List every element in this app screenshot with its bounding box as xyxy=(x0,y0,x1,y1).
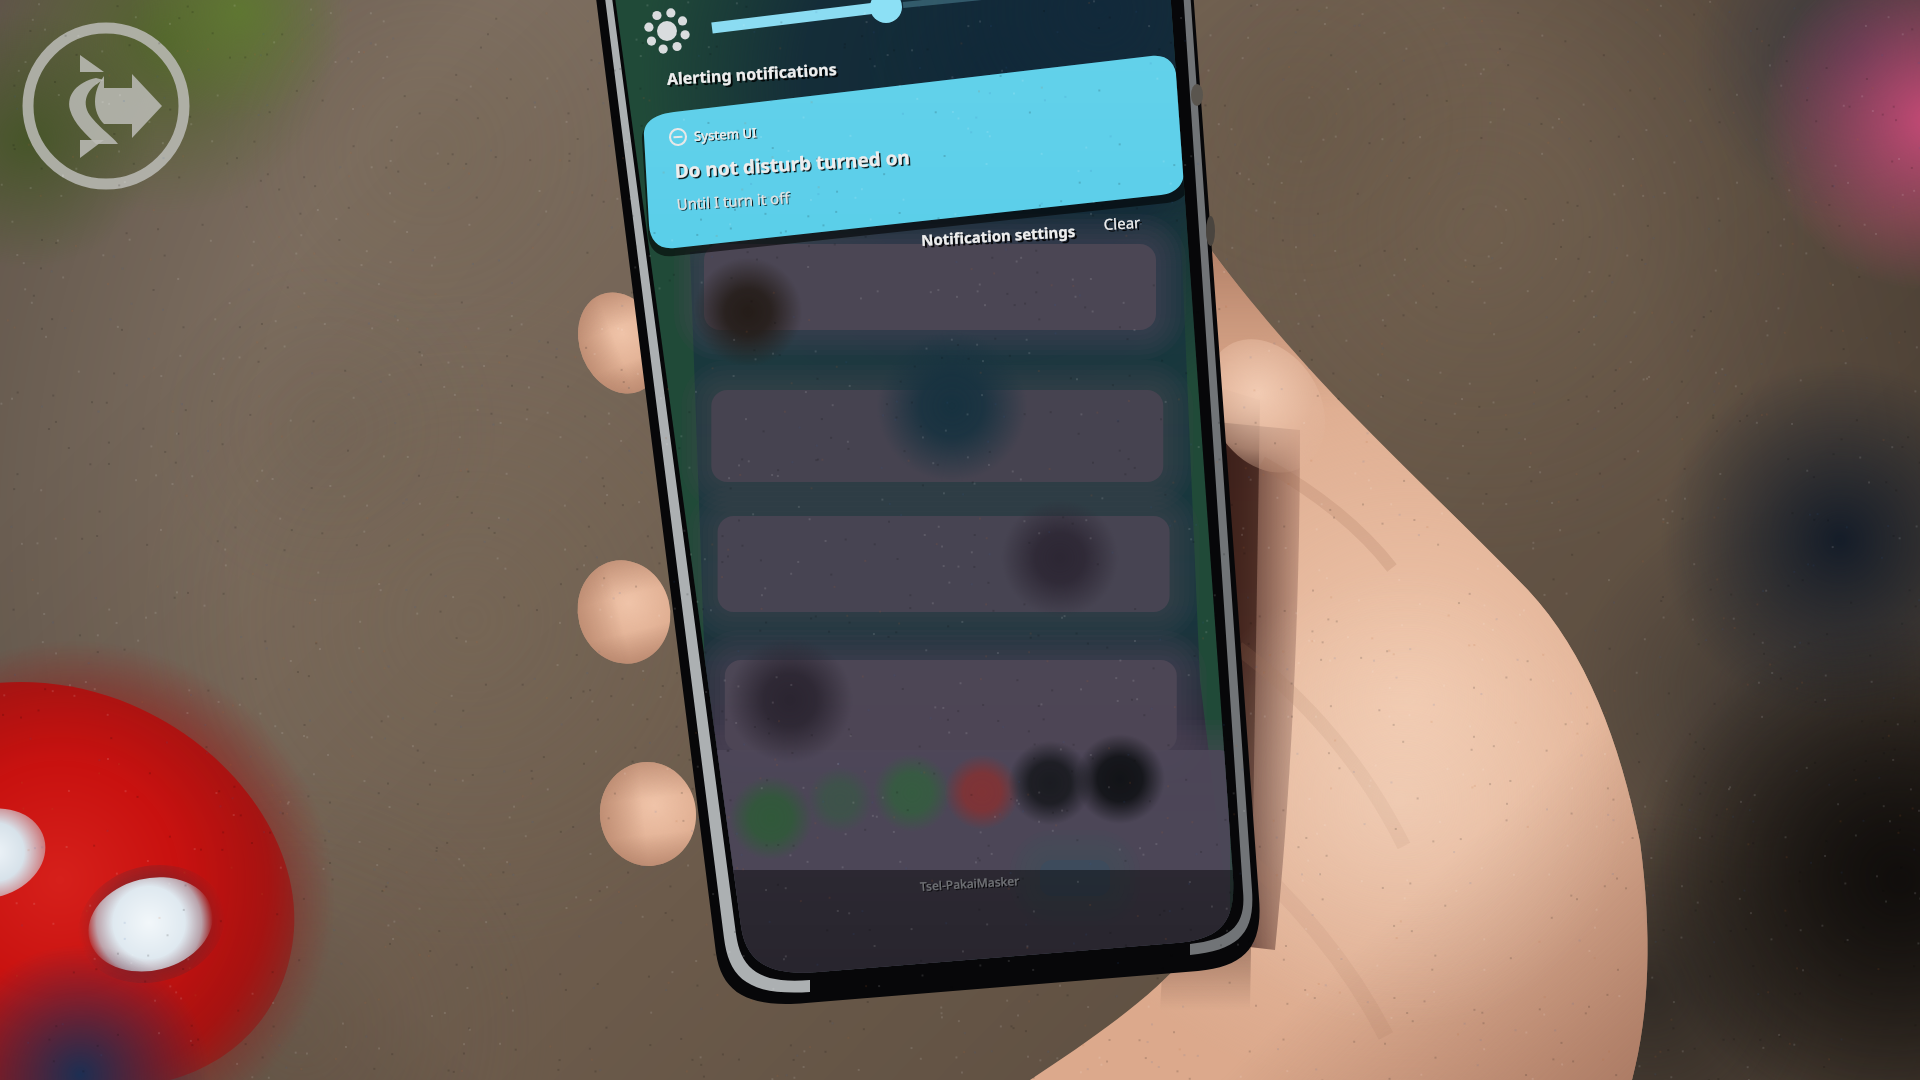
button[interactable]: Notification shade xyxy=(0,0,1920,1080)
